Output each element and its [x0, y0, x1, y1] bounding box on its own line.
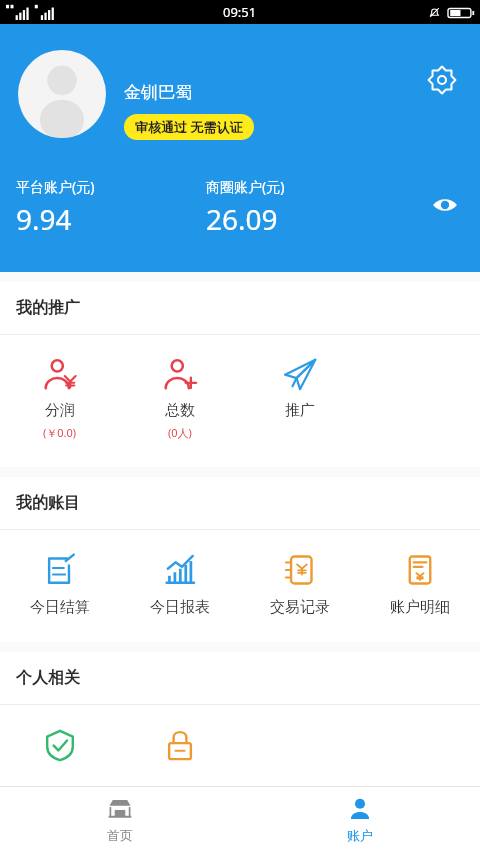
staticText: 推广: [285, 401, 315, 420]
staticText: 今日结算: [30, 598, 90, 617]
button[interactable]: Password: [120, 705, 240, 815]
staticText: 我的推广: [16, 298, 80, 318]
button[interactable]: 审核通过 无需认证: [124, 114, 254, 140]
staticText: (0人): [168, 425, 192, 440]
button[interactable]: 首页: [0, 787, 240, 853]
staticText: 交易记录: [270, 598, 330, 617]
button[interactable]: 今日结算: [0, 530, 120, 642]
button[interactable]: 推广: [240, 335, 360, 467]
staticText: 分润: [45, 401, 75, 420]
button[interactable]: 账户: [240, 787, 480, 853]
button[interactable]: 总数: [120, 335, 240, 467]
staticText: 首页: [107, 827, 133, 843]
button[interactable]: 账户明细: [360, 530, 480, 642]
staticText: 今日报表: [150, 598, 210, 617]
staticText: 商圈账户(元): [206, 177, 285, 196]
staticText: 个人相关: [16, 668, 80, 688]
staticText: 账户明细: [390, 598, 450, 617]
staticText: 我的账目: [16, 493, 80, 513]
staticText: 金钏巴蜀: [124, 82, 192, 103]
staticText: 9.94: [16, 200, 72, 238]
staticText: 09:51: [223, 3, 257, 21]
other: Security: [44, 729, 76, 761]
staticText: 总数: [165, 401, 195, 420]
staticText: 审核通过 无需认证: [135, 118, 243, 136]
button[interactable]: Toggle balance visibility: [430, 190, 460, 220]
staticText: (￥0.0): [43, 425, 77, 440]
button[interactable]: 交易记录: [240, 530, 360, 642]
staticText: 账户: [347, 827, 373, 843]
other: Password: [164, 729, 196, 761]
button[interactable]: 分润: [0, 335, 120, 467]
button[interactable]: Avatar: [18, 50, 106, 138]
button[interactable]: Security: [0, 705, 120, 815]
button[interactable]: Settings: [426, 64, 458, 96]
staticText: 26.09: [206, 200, 278, 238]
button[interactable]: 今日报表: [120, 530, 240, 642]
staticText: 平台账户(元): [16, 177, 95, 196]
